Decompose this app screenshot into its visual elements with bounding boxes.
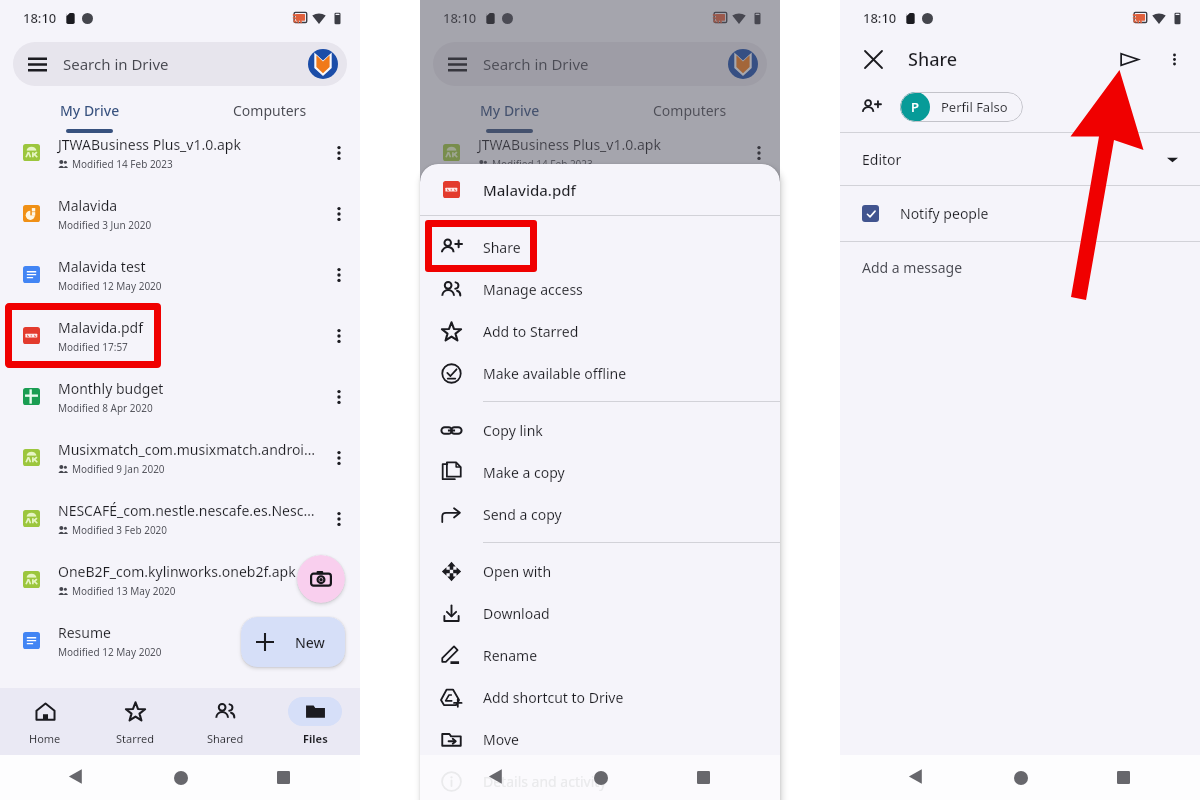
button[interactable]: Home [1014,771,1028,785]
button[interactable]: JTWABusiness Plus_v1.0.apk [0,130,360,183]
button[interactable]: Home [0,688,90,755]
staticText: My Drive [480,101,540,120]
button[interactable]: Search in Drive [13,42,347,86]
button[interactable]: Files [270,688,360,755]
button[interactable]: Add shortcut to Drive [420,676,780,718]
button[interactable]: Add to Starred [420,310,780,352]
staticText: Modified 12 May 2020 [58,645,162,659]
staticText: Search in Drive [63,54,169,74]
button[interactable]: Shared [180,688,270,755]
staticText: Modified 14 Feb 2023 [72,157,173,171]
staticText: Move [483,730,519,749]
button[interactable]: Malavida.pdf [0,305,360,366]
button[interactable]: Malavida [420,183,780,244]
staticText: Share [908,47,958,72]
staticText: 18:10 [863,9,897,27]
button[interactable]: More options [738,183,780,244]
button[interactable]: Close [860,46,886,72]
staticText: JTWABusiness Plus_v1.0.apk [478,135,661,154]
button[interactable]: JTWABusiness Plus_v1.0.apk [420,130,780,183]
staticText: Add shortcut to Drive [483,688,624,707]
button[interactable]: More options [1160,45,1188,73]
button[interactable]: Open with [420,550,780,592]
button[interactable]: Rename [420,634,780,676]
button[interactable]: P [900,92,1023,122]
button[interactable]: Details and activity [420,760,780,800]
button[interactable]: Make a copy [420,451,780,493]
button[interactable]: Home [174,771,188,785]
button[interactable]: More options [318,610,360,671]
staticText: Search in Drive [483,54,589,74]
button[interactable]: Resume [0,610,360,671]
button[interactable]: Send [1112,42,1146,76]
button[interactable]: Back [68,769,83,784]
button[interactable]: Search in Drive [433,42,767,86]
button[interactable]: Recents [277,771,290,784]
button[interactable]: Malavida test [0,244,360,305]
button[interactable]: Make available offline [420,352,780,394]
staticText: Manage access [483,280,583,299]
staticText: Open with [483,562,552,581]
button[interactable]: Computers [600,91,780,130]
button[interactable]: Computers [180,91,360,130]
staticText: Add to Starred [483,322,579,341]
button[interactable]: New [241,617,345,667]
button[interactable]: Manage access [420,268,780,310]
staticText: Malavida.pdf [483,180,576,200]
button[interactable]: Back [908,769,923,784]
button[interactable]: Monthly budget [0,366,360,427]
button[interactable]: Recents [1117,771,1130,784]
staticText: Make available offline [483,364,627,383]
button[interactable]: Back [488,769,503,784]
staticText: Modified 3 Feb 2020 [72,523,168,537]
staticText: Modified 3 Jun 2020 [478,218,572,232]
staticText: Modified 14 Feb 2023 [492,157,593,171]
button[interactable]: More options [318,488,360,549]
staticText: Add a message [862,258,963,277]
button[interactable]: More options [318,183,360,244]
button[interactable]: More options [318,427,360,488]
staticText: Starred [116,731,155,746]
staticText: Modified 12 May 2020 [58,279,162,293]
staticText: Monthly budget [58,379,164,398]
staticText: Modified 17:57 [58,340,128,354]
staticText: Musixmatch_com.musixmatch.android.l… [58,440,318,459]
staticText: 18:10 [23,9,57,27]
button[interactable]: More options [318,549,360,610]
button[interactable]: More options [318,130,360,183]
button[interactable]: NESCAFÉ_com.nestle.nescafe.es.Nesc… [0,488,360,549]
button[interactable]: More options [318,244,360,305]
button[interactable]: OneB2F_com.kylinworks.oneb2f.apk [0,549,360,610]
staticText: JTWABusiness Plus_v1.0.apk [58,135,241,154]
button[interactable]: Starred [90,688,180,755]
button[interactable]: More options [318,305,360,366]
button[interactable]: Share [420,226,780,268]
staticText: Perfil Falso [941,98,1008,116]
staticText: Malavida test [58,257,146,276]
staticText: Modified 3 Jun 2020 [58,218,152,232]
button[interactable]: Editor [840,133,1200,185]
button[interactable]: More options [318,366,360,427]
staticText: Computers [653,101,727,120]
staticText: Rename [483,646,538,665]
staticText: Home [29,731,61,746]
button[interactable]: Move [420,718,780,760]
staticText: Resume [58,623,111,642]
button[interactable]: Notify people [840,186,1200,241]
button[interactable]: Home [594,771,608,785]
button[interactable]: Download [420,592,780,634]
button[interactable]: Malavida [0,183,360,244]
staticText: Malavida.pdf [58,318,143,337]
button[interactable]: Scan with camera [297,555,345,603]
button[interactable]: More options [738,130,780,183]
button[interactable]: Send a copy [420,493,780,535]
staticText: Modified 9 Jan 2020 [72,462,165,476]
button[interactable]: Add a message [840,242,1200,292]
button[interactable]: My Drive [0,91,180,130]
button[interactable]: Copy link [420,409,780,451]
button[interactable]: Recents [697,771,710,784]
button[interactable]: Musixmatch_com.musixmatch.android.l… [0,427,360,488]
button[interactable]: My Drive [420,91,600,130]
staticText: Modified 13 May 2020 [72,584,176,598]
